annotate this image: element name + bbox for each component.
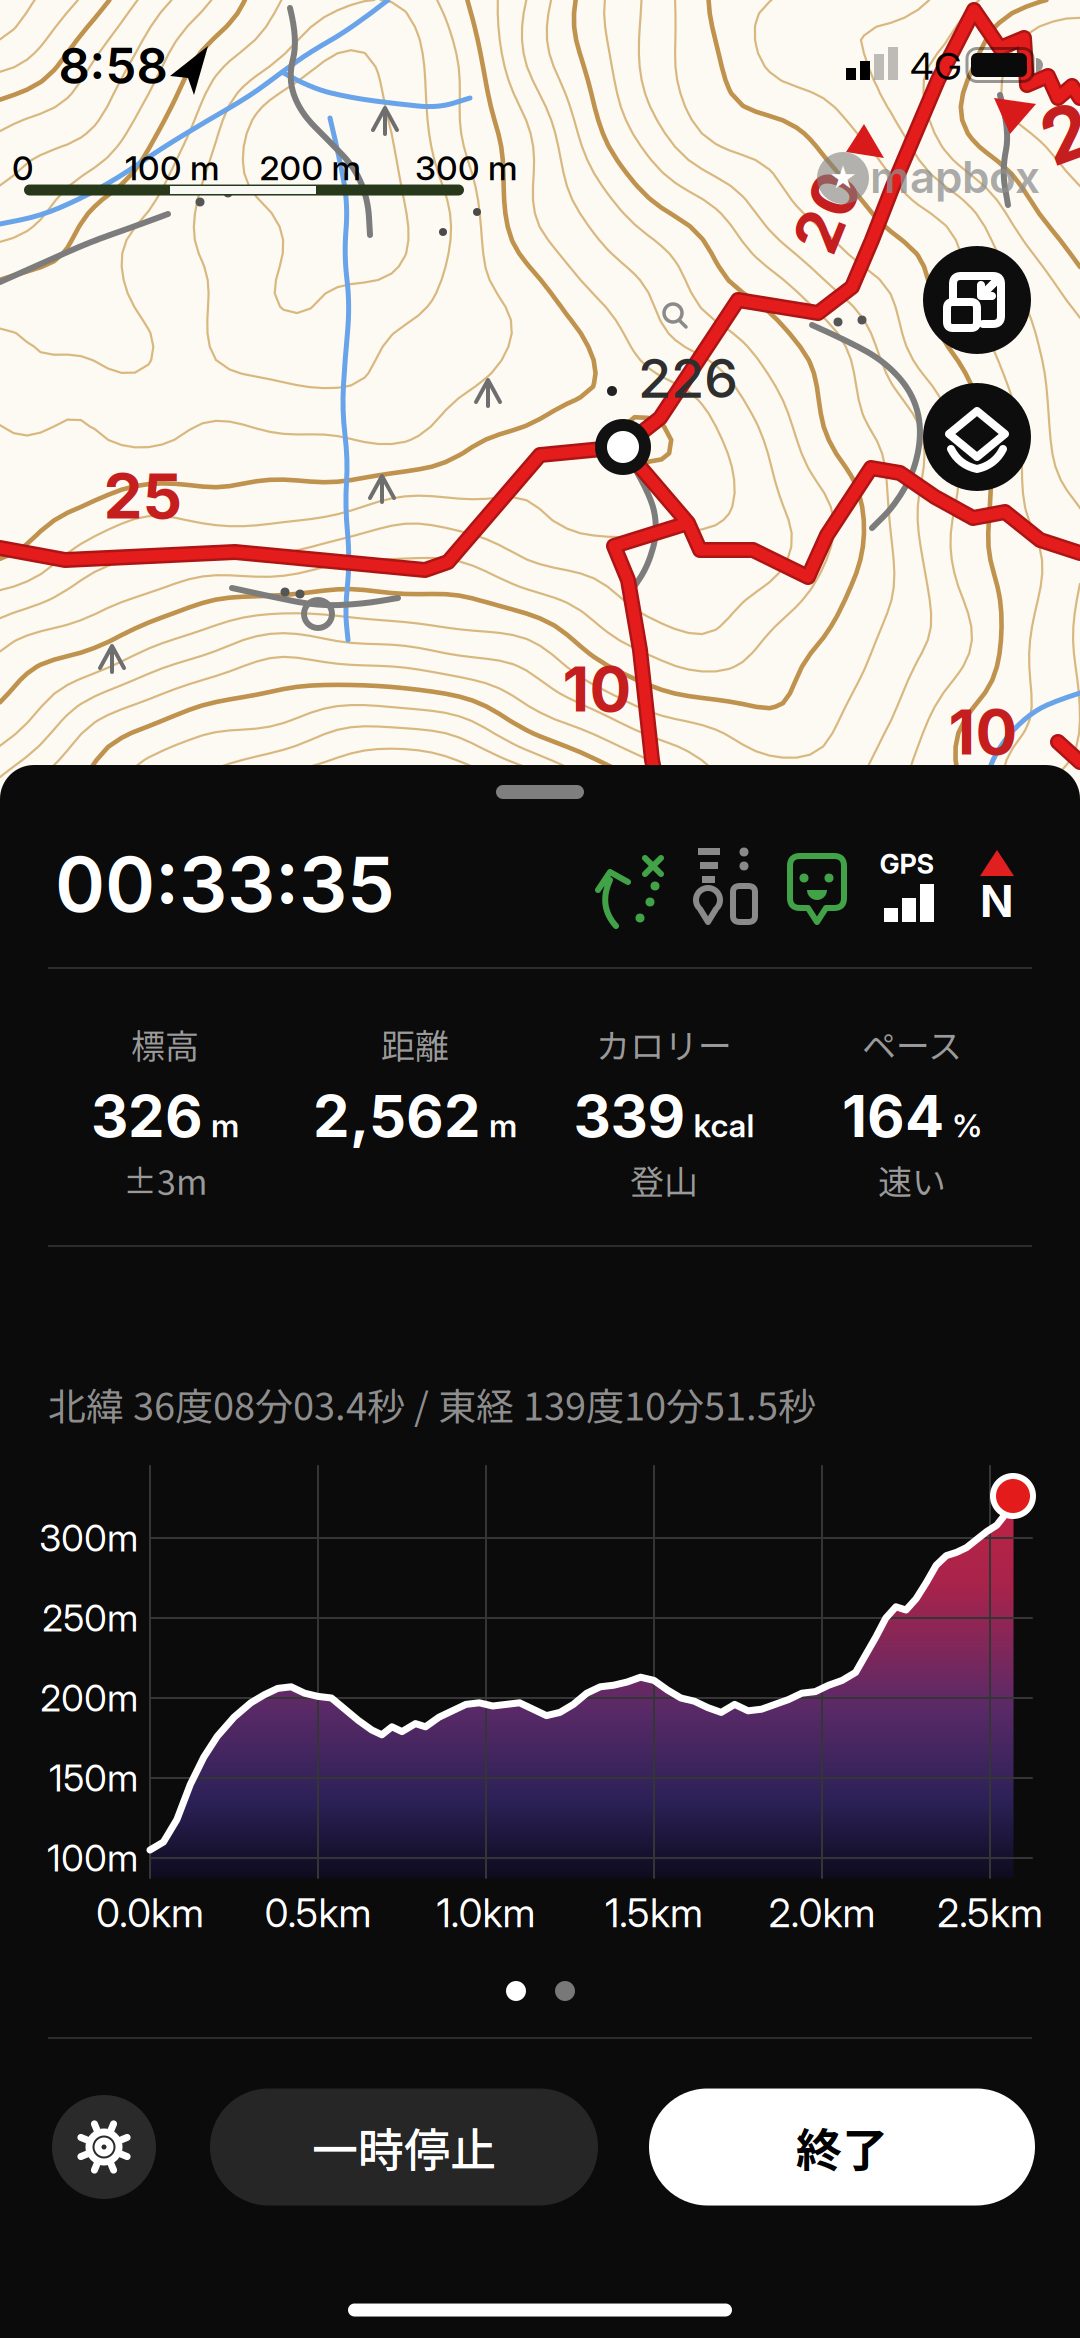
staticText: m (489, 1106, 517, 1145)
staticText: 25 (103, 458, 182, 533)
staticText: N (980, 874, 1014, 928)
button[interactable]: Shrink map (923, 246, 1031, 354)
staticText: 226 (638, 345, 738, 411)
staticText: 20 (786, 174, 867, 249)
staticText: 150m (49, 1756, 138, 1800)
staticText: 326 (91, 1081, 203, 1151)
staticText: 登山 (630, 1155, 698, 1205)
staticText: 10 (948, 694, 1017, 769)
staticText: m (211, 1106, 239, 1145)
staticText: 2.5km (937, 1889, 1043, 1937)
staticText: ★ (828, 161, 857, 195)
staticText: 0.0km (96, 1889, 204, 1937)
staticText: 距離 (381, 1019, 449, 1069)
staticText: 1.5km (605, 1889, 703, 1937)
staticText: kcal (693, 1106, 754, 1145)
staticText: 2,562 (313, 1081, 481, 1151)
staticText: 339 (573, 1081, 685, 1151)
staticText: 0 (12, 147, 34, 188)
staticText: 10 (562, 651, 631, 726)
staticText: % (952, 1106, 982, 1145)
staticText: 0.5km (264, 1889, 371, 1937)
button[interactable]: 終了 (649, 2088, 1035, 2205)
staticText: 100m (47, 1836, 138, 1880)
staticText: ±3m (123, 1155, 207, 1205)
staticText: 300m (39, 1516, 138, 1560)
staticText: 00:33:35 (55, 838, 395, 930)
button[interactable]: 一時停止 (210, 2088, 598, 2205)
staticText: 2.0km (768, 1889, 875, 1937)
staticText: 164 (842, 1081, 944, 1151)
staticText: 200 m (259, 147, 360, 188)
staticText: 200m (40, 1676, 138, 1720)
staticText: ペース (862, 1019, 962, 1069)
staticText: 一時停止 (312, 2114, 496, 2180)
button[interactable]: Settings (52, 2095, 156, 2199)
staticText: mapbox (870, 150, 1040, 204)
staticText: 300 m (415, 147, 517, 188)
staticText: 終了 (796, 2114, 888, 2180)
staticText: 1.0km (436, 1889, 535, 1937)
staticText: 標高 (131, 1019, 199, 1069)
staticText: 2 (1042, 87, 1080, 179)
staticText: 速い (878, 1155, 946, 1205)
staticText: 4G (910, 43, 962, 89)
staticText: 8:58 (58, 36, 167, 96)
staticText: 250m (42, 1596, 138, 1640)
staticText: カロリー (596, 1019, 732, 1069)
staticText: 北緯 36度08分03.4秒 / 東経 139度10分51.5秒 (48, 1376, 816, 1431)
button[interactable]: Map layers (923, 383, 1031, 491)
staticText: GPS (879, 848, 934, 880)
staticText: 100 m (125, 147, 219, 188)
